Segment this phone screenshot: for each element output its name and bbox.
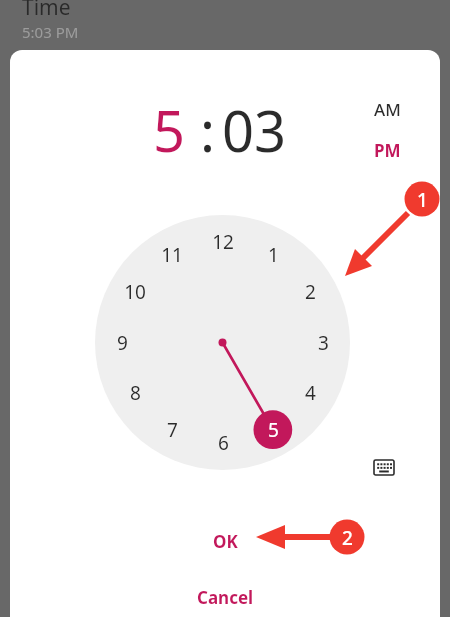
staticText: 5 — [268, 417, 279, 443]
staticText: 2 — [305, 279, 316, 305]
staticText: AM — [374, 98, 401, 121]
staticText: 10 — [124, 279, 146, 305]
staticText: 3 — [318, 330, 329, 356]
staticText: 1 — [417, 187, 428, 213]
staticText: 7 — [167, 417, 178, 443]
button[interactable]: Switch to text input — [367, 450, 401, 484]
button[interactable]: OK — [175, 524, 275, 558]
staticText: 03 — [222, 92, 287, 162]
button[interactable]: 03 — [222, 92, 318, 162]
button[interactable]: Cancel — [163, 580, 287, 614]
staticText: OK — [213, 530, 238, 553]
staticText: 12 — [212, 229, 234, 255]
button[interactable]: AM — [360, 96, 414, 122]
button[interactable]: 5 — [140, 92, 198, 162]
staticText: 5 — [153, 92, 186, 162]
staticText: 5:03 PM — [22, 22, 79, 42]
staticText: 2 — [342, 525, 353, 551]
staticText: 1 — [268, 242, 279, 268]
staticText: 8 — [130, 380, 141, 406]
staticText: 6 — [218, 430, 229, 456]
staticText: PM — [374, 139, 401, 162]
staticText: : — [200, 92, 216, 168]
staticText: 4 — [305, 380, 316, 406]
staticText: Time — [22, 0, 71, 22]
staticText: 11 — [161, 242, 183, 268]
staticText: Cancel — [197, 586, 254, 609]
button[interactable]: 1 — [95, 215, 350, 470]
button[interactable]: PM — [360, 137, 414, 163]
staticText: 9 — [117, 330, 128, 356]
